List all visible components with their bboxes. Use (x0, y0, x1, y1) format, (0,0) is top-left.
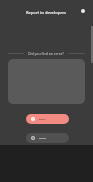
button[interactable]: Discard (26, 133, 69, 143)
staticText: Discard (39, 137, 47, 140)
button[interactable]: Help (77, 5, 89, 17)
button[interactable]: Report (26, 114, 69, 124)
staticText: Did you find an error? (28, 51, 64, 56)
staticText: Report (39, 118, 46, 121)
staticText: Report to developers (26, 10, 67, 15)
